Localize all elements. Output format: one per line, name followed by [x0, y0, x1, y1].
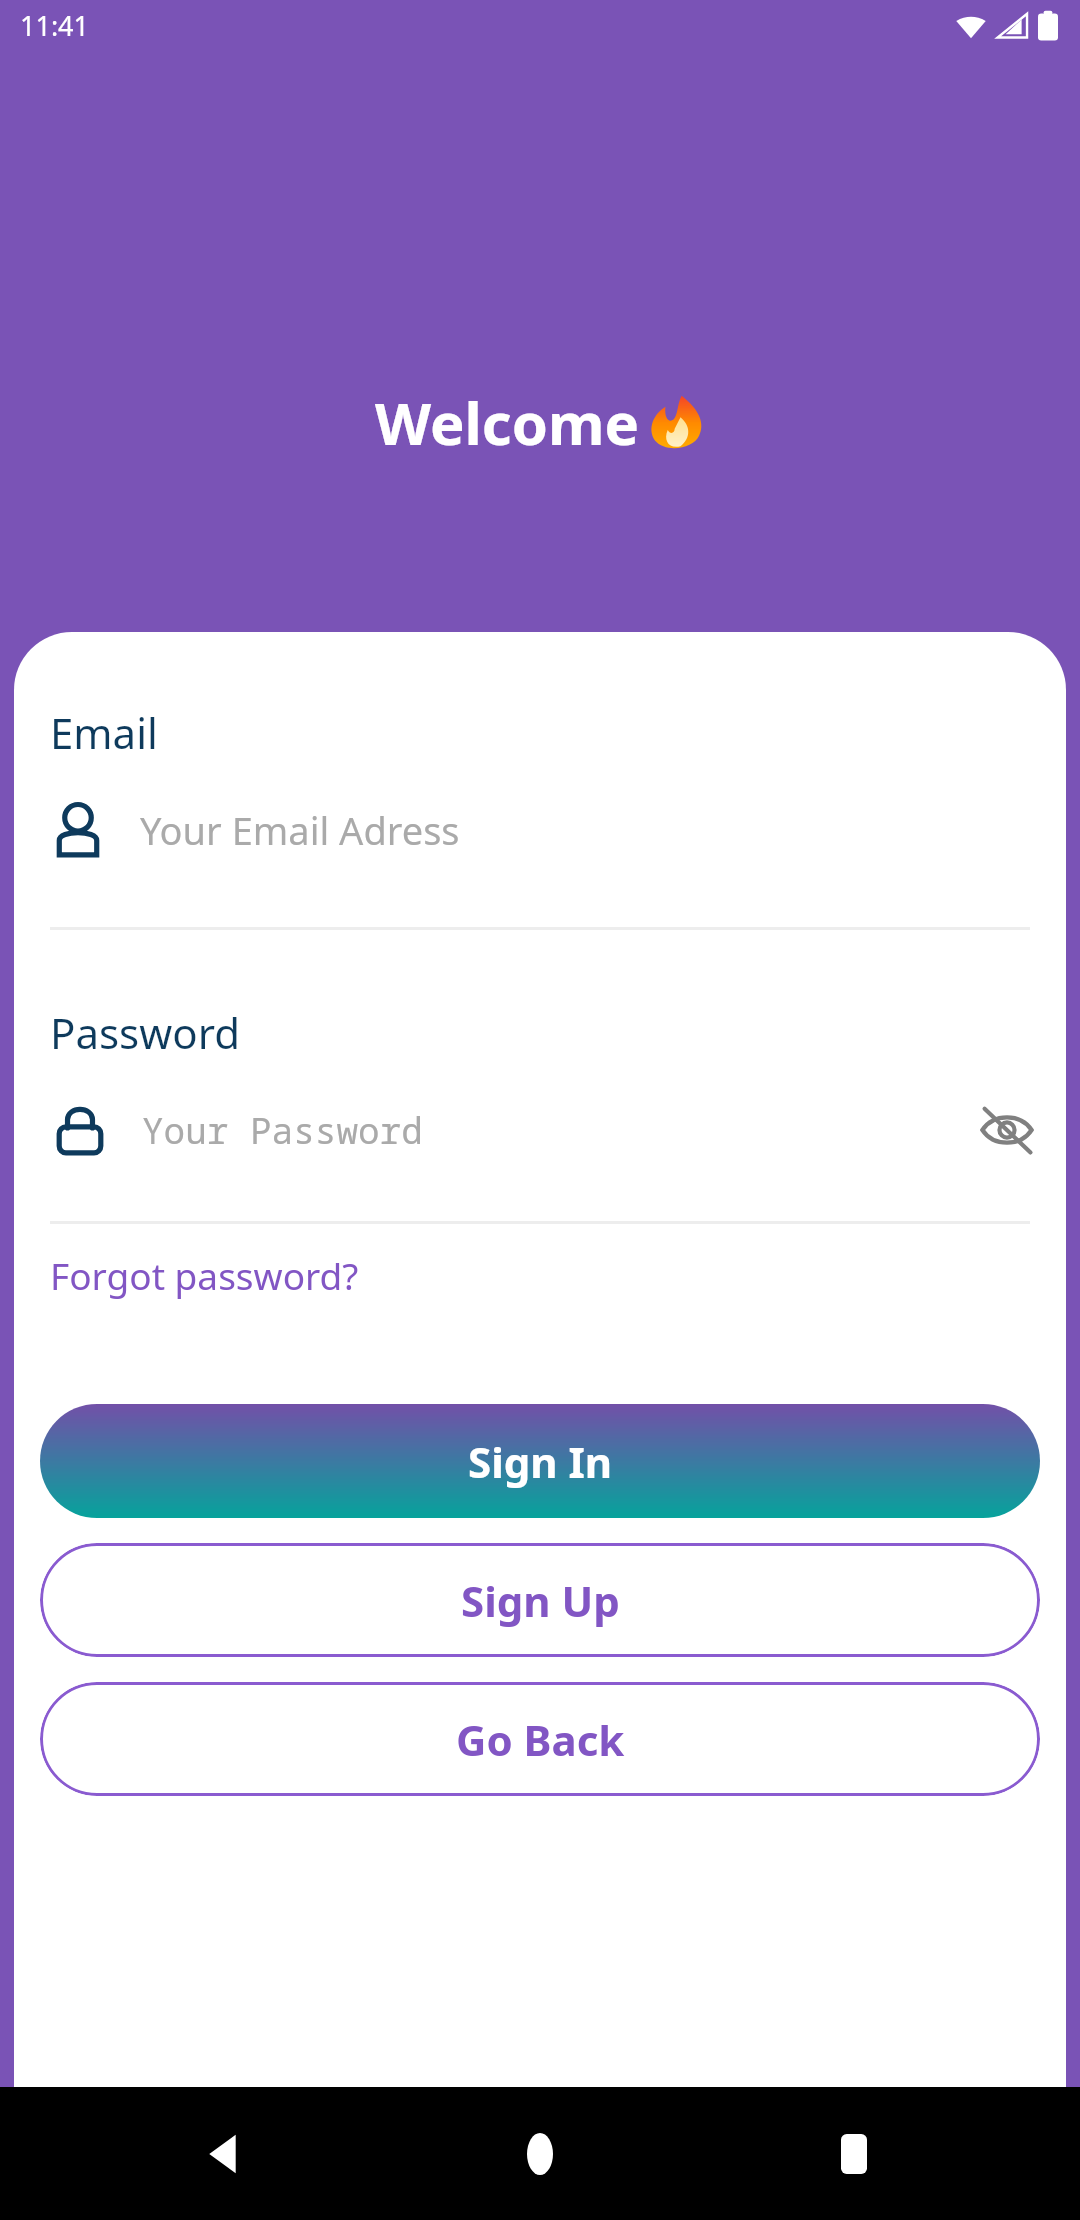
staticText: Sign Up [461, 1572, 620, 1629]
staticText: Sign In [468, 1433, 613, 1490]
button[interactable]: Home [494, 2108, 586, 2200]
button[interactable]: Sign Up [40, 1543, 1040, 1657]
button[interactable]: Back [180, 2108, 272, 2200]
button[interactable]: Go Back [40, 1682, 1040, 1796]
staticText: Password [50, 1004, 240, 1061]
staticText: Forgot password? [50, 1250, 359, 1300]
staticText: Your Password [142, 1106, 423, 1155]
button[interactable]: Sign In [40, 1404, 1040, 1518]
staticText: Your Email Adress [140, 804, 460, 856]
button[interactable]: Show password [968, 1091, 1046, 1169]
staticText: Go Back [456, 1711, 625, 1768]
button[interactable]: Your Password [14, 1087, 1066, 1173]
button[interactable]: Your Email Adress [14, 787, 1066, 873]
button[interactable]: Forgot password? [50, 1250, 359, 1300]
staticText: Welcome [375, 383, 640, 462]
staticText: 11:41 [20, 7, 90, 44]
button[interactable]: Recent apps [808, 2108, 900, 2200]
staticText: Email [50, 704, 158, 761]
